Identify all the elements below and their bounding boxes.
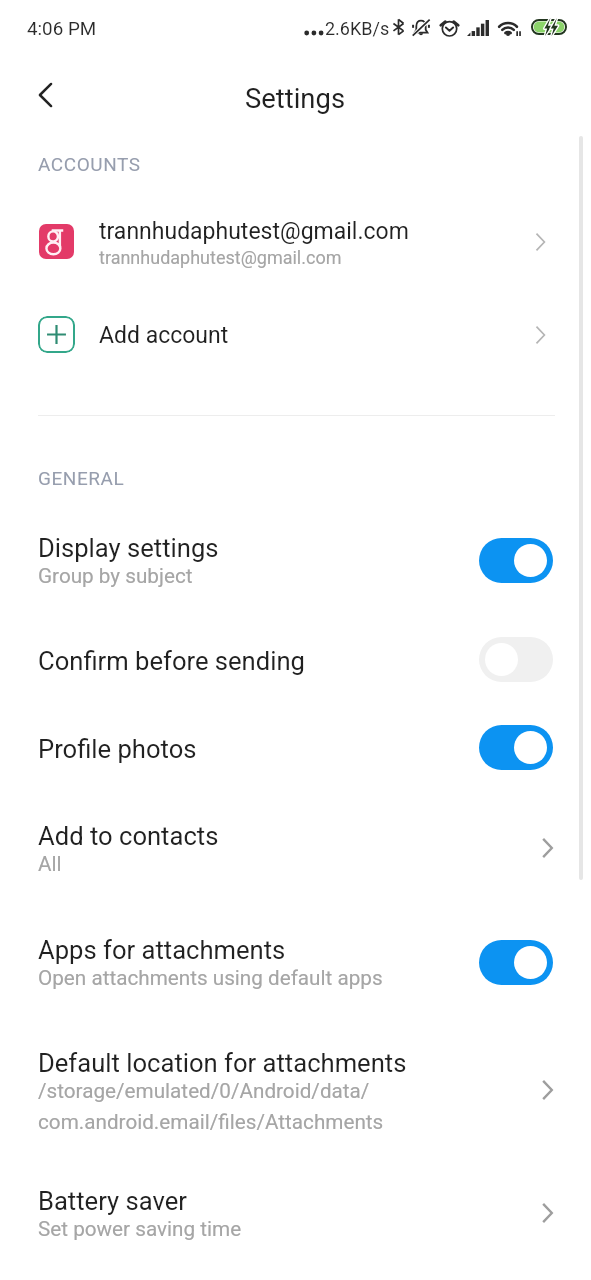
button[interactable]: Turn off xyxy=(479,538,553,583)
staticText: trannhudaphutest@gmail.com xyxy=(99,218,409,245)
staticText: Open attachments using default apps xyxy=(38,966,383,990)
staticText: /storage/emulated/0/Android/data/ xyxy=(38,1079,370,1103)
staticText: 2.6KB/s xyxy=(325,18,390,39)
staticText: Add to contacts xyxy=(38,821,219,851)
staticText: trannhudaphutest@gmail.com xyxy=(99,247,342,268)
staticText: Battery saver xyxy=(38,1186,187,1216)
button[interactable] xyxy=(0,811,591,890)
staticText: All xyxy=(38,852,62,876)
button[interactable] xyxy=(0,724,591,780)
staticText: com.android.email/files/Attachments xyxy=(38,1110,384,1134)
button[interactable] xyxy=(0,203,591,281)
button[interactable]: Turn off xyxy=(479,725,553,770)
staticText: Set power saving time xyxy=(38,1217,242,1241)
button[interactable] xyxy=(0,297,591,372)
staticText: Display settings xyxy=(38,533,219,563)
staticText: Apps for attachments xyxy=(38,935,286,965)
button[interactable]: Turn on xyxy=(479,637,553,682)
staticText: Default location for attachments xyxy=(38,1048,407,1078)
button[interactable] xyxy=(0,636,591,692)
button[interactable] xyxy=(0,1038,591,1148)
button[interactable] xyxy=(0,1176,591,1255)
button[interactable]: Turn off xyxy=(479,940,553,985)
staticText: ACCOUNTS xyxy=(38,153,141,175)
staticText: Add account xyxy=(99,322,229,349)
staticText: Settings xyxy=(245,83,346,115)
button[interactable] xyxy=(0,523,591,602)
staticText: Profile photos xyxy=(38,734,197,764)
staticText: GENERAL xyxy=(38,467,125,489)
staticText: Confirm before sending xyxy=(38,646,305,676)
button[interactable] xyxy=(0,925,591,1004)
staticText: 4:06 PM xyxy=(27,18,97,40)
staticText: Group by subject xyxy=(38,564,193,588)
button[interactable]: Back xyxy=(17,66,74,123)
